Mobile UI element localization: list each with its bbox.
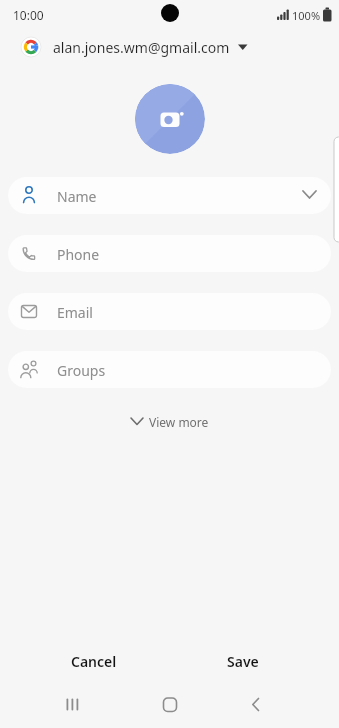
staticText: 100% [292,8,321,23]
button[interactable]: View more [120,408,220,436]
staticText: 10:00 [13,7,44,23]
button[interactable]: Cancel [55,644,135,678]
button[interactable] [135,84,205,154]
button[interactable]: Save [207,644,281,678]
button[interactable]: Phone [8,235,331,272]
staticText: Email [57,303,93,322]
staticText: Name [57,187,97,206]
button[interactable]: alan.jones.wm@gmail.com [14,34,264,62]
button[interactable]: Email [8,293,331,330]
staticText: Save [227,652,259,671]
staticText: alan.jones.wm@gmail.com [53,38,230,57]
staticText: Cancel [71,652,117,671]
staticText: View more [149,414,209,430]
button[interactable] [56,692,88,720]
button[interactable]: Groups [8,351,331,388]
button[interactable]: Name [8,177,331,214]
button[interactable] [154,692,186,720]
staticText: Phone [57,245,100,264]
button[interactable] [240,692,272,720]
staticText: Groups [57,361,106,380]
